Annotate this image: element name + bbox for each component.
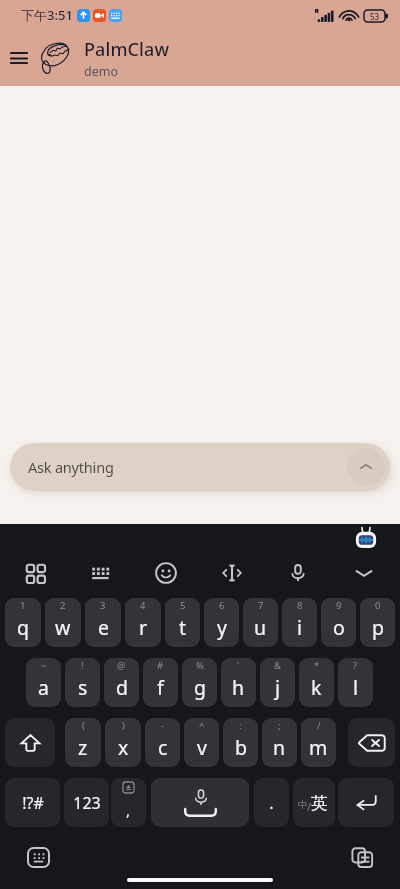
staticText: 英 [311,793,328,814]
button[interactable]: % [182,658,217,707]
button[interactable]: @ [104,658,139,707]
staticText: e [98,614,109,641]
button[interactable]: / [301,718,336,767]
staticText: & [274,659,281,672]
staticText: # [157,659,164,672]
staticText: c [158,734,168,761]
button[interactable]: ( [65,718,101,767]
button[interactable]: Switch keyboard [22,841,54,873]
button[interactable]: Backspace [348,718,395,767]
button[interactable]: 3 [85,598,121,647]
button[interactable]: & [260,658,295,707]
staticText: 9 [336,599,342,612]
staticText: 53 [370,11,380,22]
button[interactable]: Keyboard layout [81,553,121,593]
staticText: ' [237,659,240,672]
staticText: r [139,614,148,641]
staticText: z [78,734,88,761]
staticText: 3 [100,599,106,612]
staticText: demo [84,63,118,80]
button[interactable]: ; [262,718,297,767]
button[interactable]: ) [105,718,141,767]
button[interactable]: Move cursor [212,553,252,593]
staticText: - [161,719,165,732]
button[interactable]: Clipboard [346,841,378,873]
button[interactable]: 8 [282,598,317,647]
staticText: !?# [22,792,44,814]
button[interactable]: ! [65,658,100,707]
button[interactable]: 4 [125,598,161,647]
button[interactable]: 2 [45,598,81,647]
staticText: 7 [258,599,264,612]
button[interactable]: ? [338,658,373,707]
staticText: ? [353,659,358,672]
button[interactable]: 7 [243,598,278,647]
button[interactable]: Send [347,448,385,486]
staticText: b [235,734,247,761]
button[interactable]: 123 [64,778,109,827]
staticText: ~ [41,659,47,672]
staticText: 中 [298,799,308,811]
button[interactable]: Enter [338,778,394,827]
staticText: o [333,614,345,641]
staticText: s [78,674,88,701]
staticText: d [116,674,128,701]
staticText: ^ [199,719,205,732]
staticText: 5 [180,599,186,612]
staticText: x [118,734,129,761]
button[interactable]: Emoji [146,553,186,593]
staticText: . [269,792,274,814]
staticText: , [126,800,131,820]
staticText: @ [117,659,126,672]
button[interactable]: Space [151,778,249,827]
staticText: t [179,614,187,641]
staticText: u [254,614,267,641]
staticText: / [317,719,321,732]
button[interactable]: ~ [26,658,61,707]
staticText: ! [81,659,84,672]
staticText: 6 [219,599,225,612]
staticText: h [232,674,245,701]
staticText: / [307,799,312,814]
button[interactable]: Hide keyboard [344,553,384,593]
staticText: 下午3:51 [21,6,73,24]
staticText: PalmClaw [84,37,170,62]
button[interactable]: Menu [0,39,38,77]
staticText: m [309,734,328,761]
staticText: v [197,734,207,761]
button[interactable]: 0 [360,598,395,647]
staticText: Ask anything [28,457,114,477]
button[interactable]: Ask anything [10,443,390,491]
staticText: i [297,614,303,641]
button[interactable]: . [254,778,289,827]
staticText: l [353,674,359,701]
button[interactable]: * [299,658,334,707]
button[interactable]: - [145,718,180,767]
staticText: 4 [140,599,146,612]
staticText: ( [82,719,85,732]
staticText: ) [122,719,125,732]
button[interactable]: Language [293,778,335,827]
staticText: g [194,674,206,701]
button[interactable]: # [143,658,178,707]
staticText: q [17,614,29,641]
button[interactable]: Shift [5,718,55,767]
button[interactable]: Voice input [278,553,318,593]
staticText: 8 [297,599,303,612]
staticText: k [311,674,322,701]
button[interactable]: !?# [5,778,60,827]
staticText: : [239,719,242,732]
staticText: y [217,614,227,641]
button[interactable]: ^ [184,718,219,767]
staticText: 2 [60,599,66,612]
button[interactable]: 9 [321,598,356,647]
button[interactable]: 5 [165,598,200,647]
button[interactable]: 1 [5,598,41,647]
staticText: f [157,674,164,701]
button[interactable]: Comma [111,778,146,827]
button[interactable]: : [223,718,258,767]
button[interactable]: 6 [204,598,239,647]
staticText: j [275,674,281,701]
button[interactable]: Sticker panel [15,553,55,593]
button[interactable]: ' [221,658,256,707]
